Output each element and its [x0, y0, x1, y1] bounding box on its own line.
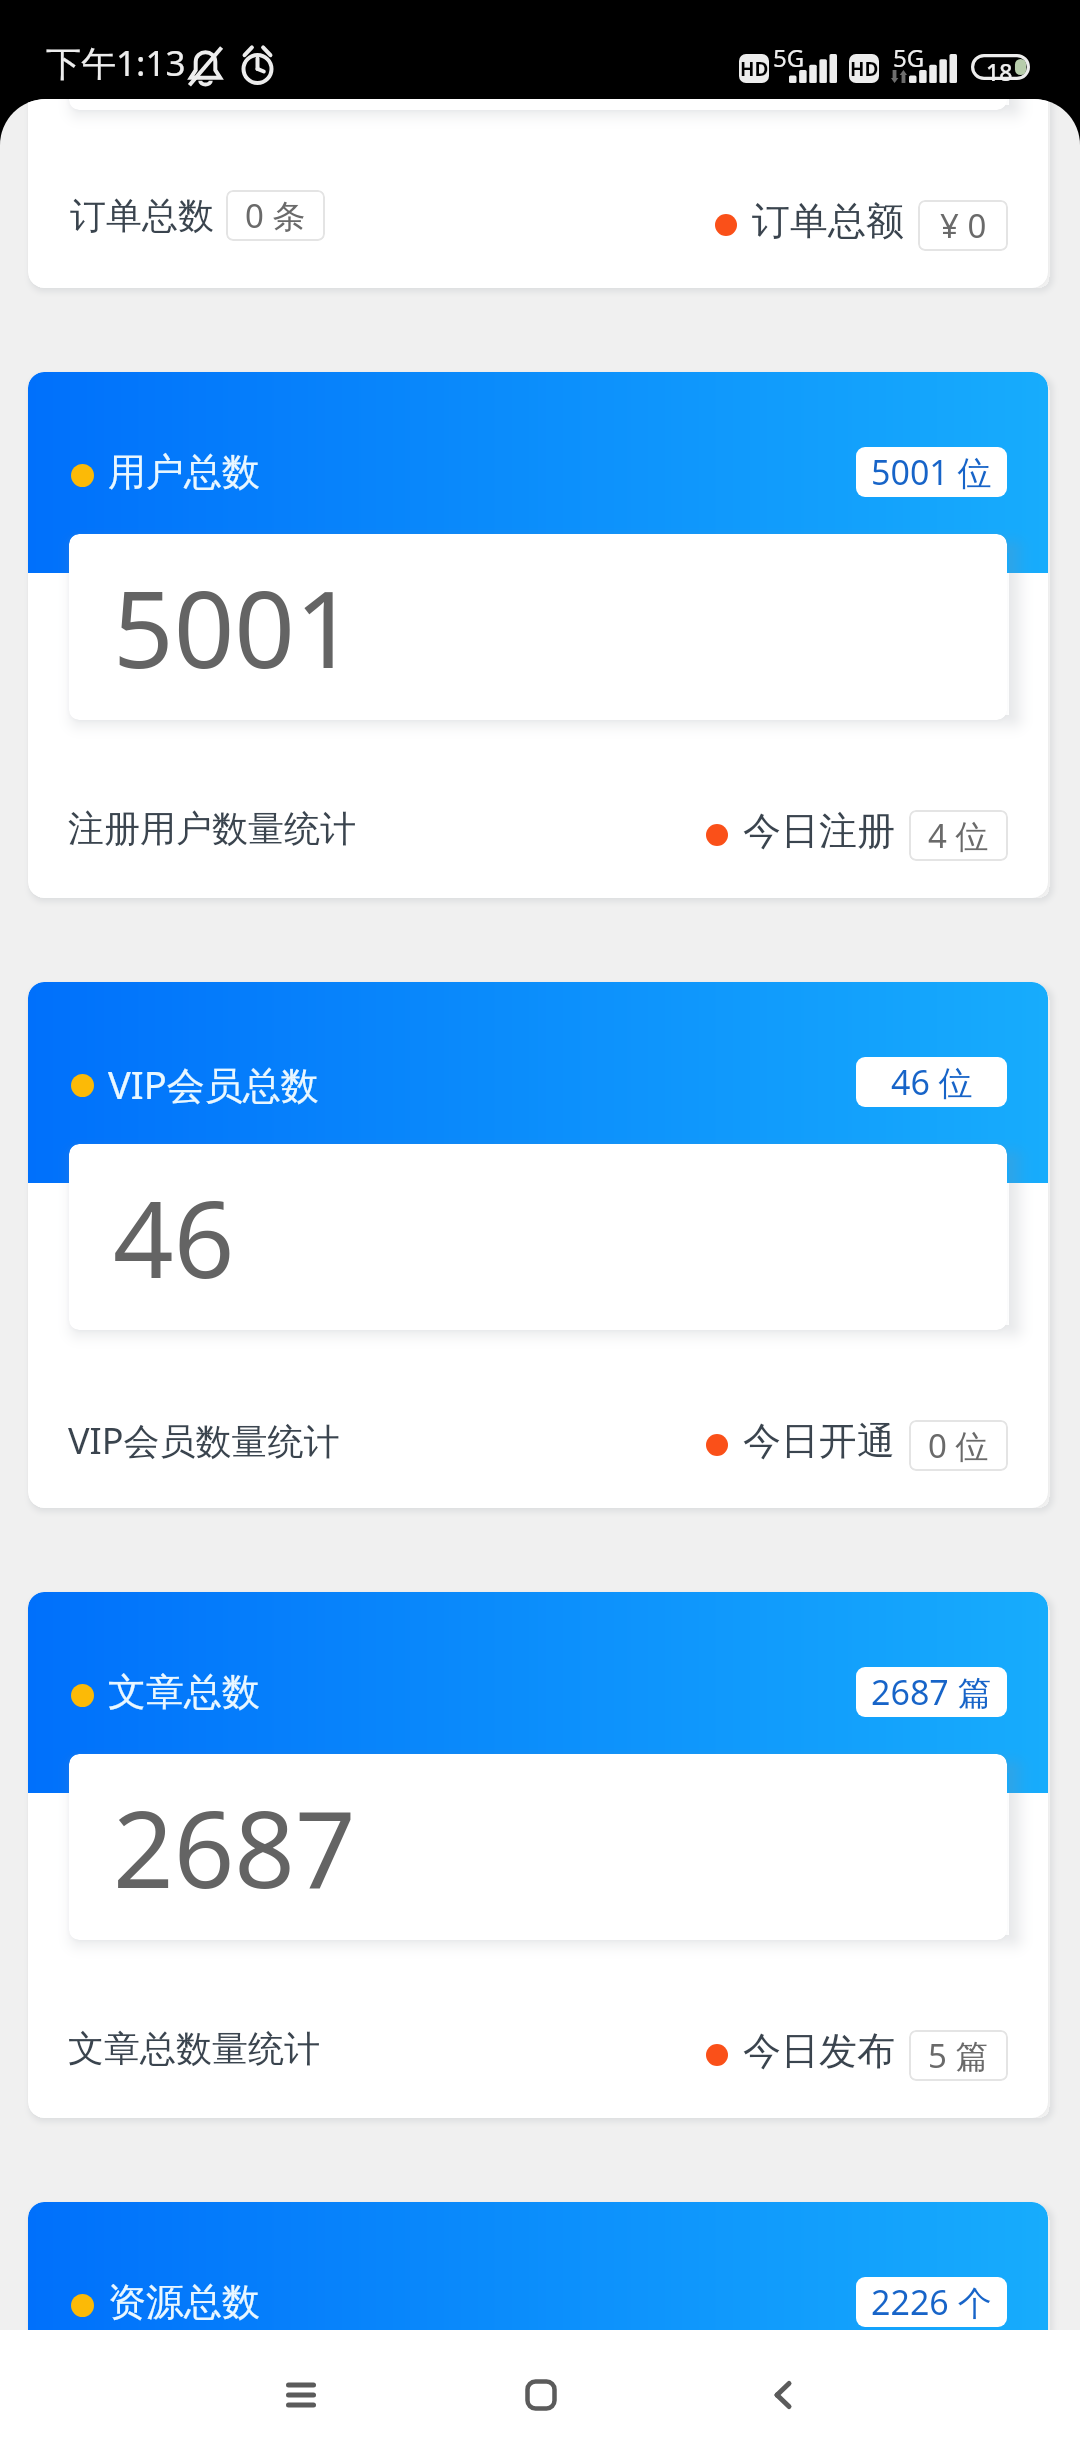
button[interactable]: 文章总数	[28, 1592, 1048, 2118]
staticText: 2226 个	[871, 2279, 992, 2325]
staticText: HD	[740, 56, 769, 82]
staticText: ¥ 0	[940, 203, 987, 248]
button[interactable]: Home	[493, 2347, 589, 2443]
staticText: 资源总数	[108, 2278, 260, 2326]
staticText: 2687	[113, 1775, 356, 1919]
staticText: 今日发布	[743, 2027, 895, 2075]
staticText: 文章总数量统计	[68, 2026, 320, 2071]
staticText: 订单总数	[70, 193, 214, 238]
staticText: 2226	[113, 2385, 356, 2460]
staticText: 订单总额	[752, 197, 904, 245]
button[interactable]: VIP会员总数	[28, 982, 1048, 1508]
staticText: 0 位	[928, 1423, 989, 1468]
button[interactable]: 用户总数	[28, 372, 1048, 898]
staticText: 18	[986, 56, 1013, 82]
button[interactable]: 订单总数	[28, 99, 1048, 288]
staticText: 46	[113, 1165, 235, 1309]
button[interactable]: 资源总数	[28, 2202, 1048, 2460]
staticText: HD	[850, 56, 879, 82]
button[interactable]: Back	[735, 2347, 831, 2443]
staticText: 4 位	[928, 813, 989, 858]
staticText: 2687 篇	[871, 1669, 992, 1715]
staticText: 下午1:13	[46, 39, 186, 87]
staticText: 文章总数	[108, 1668, 260, 1716]
staticText: VIP会员数量统计	[68, 1416, 340, 1465]
staticText: 5001 位	[871, 449, 992, 495]
staticText: 46 位	[891, 1059, 973, 1105]
staticText: 5G	[893, 41, 925, 74]
staticText: 0 条	[245, 193, 306, 238]
staticText: 今日注册	[743, 807, 895, 855]
staticText: 5001	[113, 555, 356, 699]
staticText: 5 篇	[928, 2033, 989, 2078]
staticText: 今日开通	[743, 1417, 895, 1465]
staticText: 注册用户数量统计	[68, 806, 356, 851]
staticText: 5G	[773, 41, 805, 74]
button[interactable]: Recents	[253, 2347, 349, 2443]
staticText: VIP会员总数	[108, 1058, 319, 1110]
staticText: 用户总数	[108, 448, 260, 496]
